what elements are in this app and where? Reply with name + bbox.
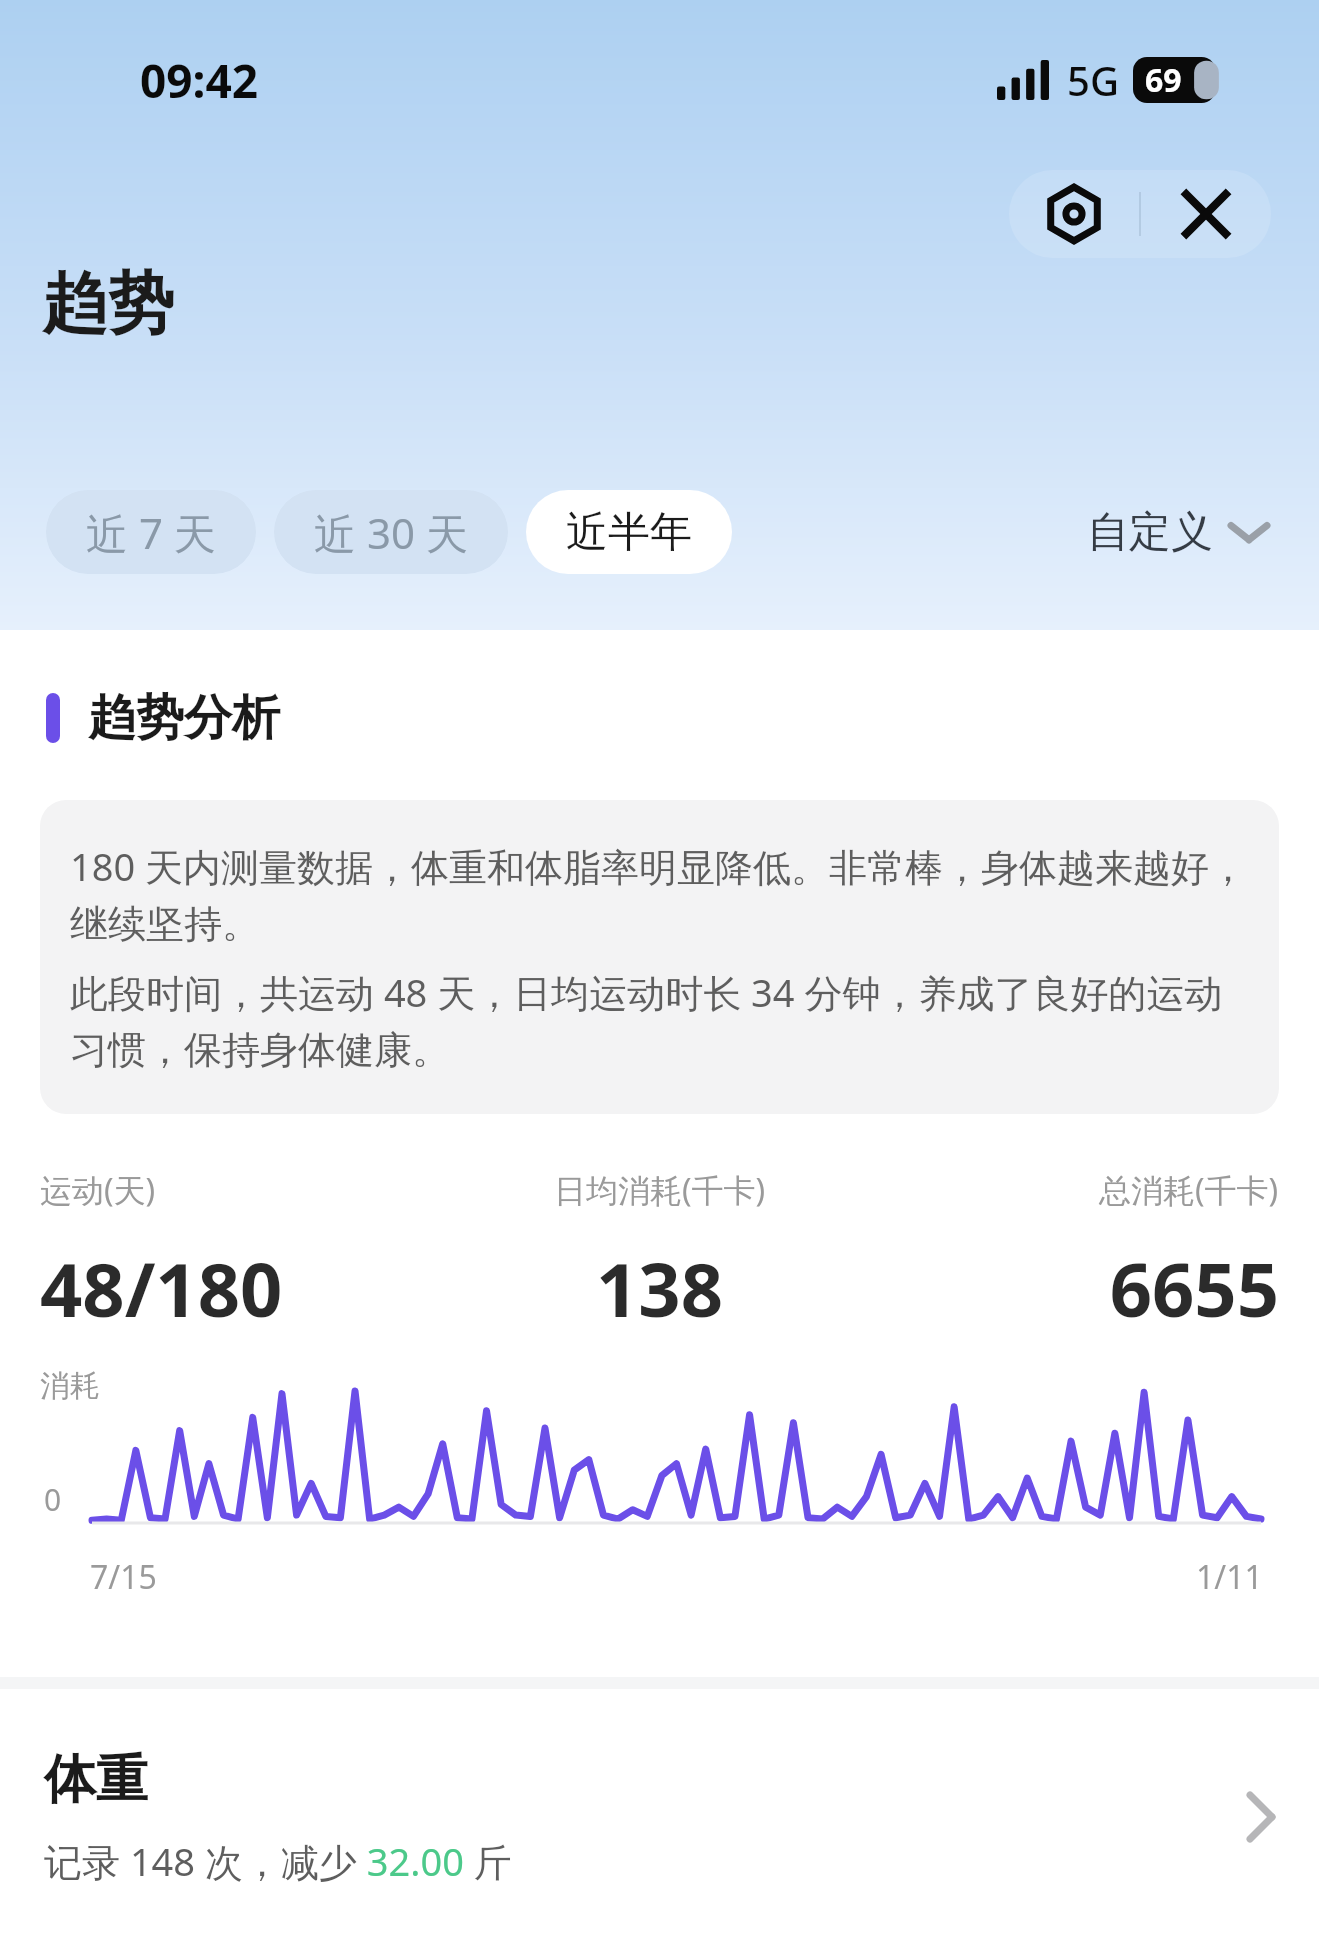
- staticText: 此段时间，共运动 48 天，日均运动时长 34 分钟，养成了良好的运动习惯，保持…: [70, 966, 1249, 1074]
- staticText: 0: [44, 1479, 62, 1520]
- button[interactable]: 近半年: [526, 490, 732, 574]
- button[interactable]: 近 30 天: [274, 490, 508, 574]
- staticText: 日均消耗(千卡): [554, 1168, 766, 1212]
- staticText: 记录 148 次，减少 32.00 斤: [44, 1835, 512, 1887]
- staticText: 趋势: [42, 262, 174, 345]
- staticText: 69: [1145, 58, 1182, 102]
- staticText: 5G: [1067, 53, 1119, 107]
- button[interactable]: 体重: [0, 1689, 1319, 1931]
- staticText: 自定义: [1087, 506, 1213, 559]
- staticText: 趋势分析: [88, 688, 280, 748]
- staticText: 180 天内测量数据，体重和体脂率明显降低。非常棒，身体越来越好，继续坚持。: [70, 840, 1249, 948]
- staticText: 近 7 天: [86, 504, 216, 561]
- staticText: 总消耗(千卡): [1099, 1168, 1279, 1212]
- button[interactable]: Settings: [1009, 170, 1139, 258]
- staticText: 近半年: [566, 506, 692, 559]
- staticText: 09:42: [140, 49, 259, 112]
- staticText: 近 30 天: [314, 504, 468, 561]
- staticText: 消耗: [40, 1367, 100, 1405]
- button[interactable]: 自定义: [1077, 490, 1279, 574]
- staticText: 1/11: [1196, 1555, 1263, 1599]
- staticText: 138: [596, 1238, 723, 1339]
- staticText: 运动(天): [40, 1168, 156, 1212]
- staticText: 6655: [1109, 1238, 1279, 1339]
- staticText: 体重: [44, 1747, 148, 1813]
- button[interactable]: 近 7 天: [46, 490, 256, 574]
- staticText: 48/180: [40, 1238, 283, 1339]
- button[interactable]: Close: [1141, 170, 1271, 258]
- staticText: 7/15: [90, 1555, 157, 1599]
